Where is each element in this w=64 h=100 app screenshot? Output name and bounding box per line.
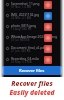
- staticText: Recover files: [19, 68, 45, 74]
- staticText: WhatsApp Image 2023-07.jpeg: [11, 35, 57, 39]
- staticText: IMG_20231102.jpg: [11, 13, 39, 17]
- staticText: 07 Nov 1.4 MB: [11, 5, 32, 9]
- other: File thumbnail: [44, 12, 52, 20]
- staticText: Recording_04.m4a: [11, 57, 39, 61]
- button[interactable]: WhatsApp Image 2023-07.jpeg: [0, 32, 64, 43]
- button[interactable]: Screenshot_11.png: [0, 0, 64, 10]
- staticText: Screenshot_11.png: [11, 2, 40, 6]
- staticText: 02 Nov 2.1 MB: [11, 16, 32, 20]
- staticText: 07 Jul 860 KB: [11, 38, 30, 42]
- staticText: 21 Jun 340 KB: [11, 49, 31, 53]
- staticText: photo_0815.jpeg: [11, 24, 37, 28]
- staticText: Document_final_v2.pdf: [11, 46, 46, 50]
- staticText: 15 Aug 840 KB: [11, 27, 32, 31]
- staticText: Recover files: [11, 79, 53, 88]
- other: File thumbnail: [44, 1, 52, 9]
- staticText: 03 May 5.2 MB: [11, 60, 32, 64]
- other: File thumbnail: [44, 45, 52, 53]
- other: File thumbnail: [44, 23, 52, 31]
- button[interactable]: Recover files: [2, 66, 62, 75]
- button[interactable]: IMG_20231102.jpg: [0, 10, 64, 21]
- button[interactable]: photo_0815.jpeg: [0, 21, 64, 32]
- staticText: Easily deleted: [9, 88, 55, 97]
- button[interactable]: Document_final_v2.pdf: [0, 43, 64, 54]
- other: File thumbnail: [44, 34, 52, 42]
- other: File thumbnail: [44, 56, 52, 64]
- button[interactable]: Recording_04.m4a: [0, 54, 64, 65]
